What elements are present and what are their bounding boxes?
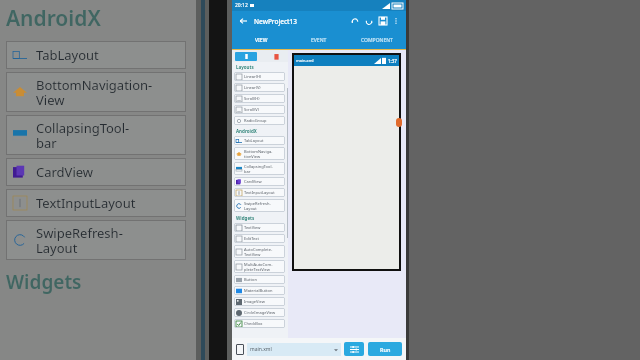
staticText: ImageView (244, 299, 265, 304)
staticText: Linear(H) (244, 74, 262, 79)
staticText: 20:12 (235, 2, 248, 9)
button[interactable]: VIEW (232, 31, 290, 49)
staticText: COMPONENT (361, 37, 393, 44)
button[interactable]: CardView (234, 177, 285, 186)
staticText: AutoComplete- TextView (244, 247, 273, 257)
button[interactable]: CollapsingTool- bar (6, 115, 186, 155)
button[interactable]: Redo (362, 14, 376, 28)
staticText: Widgets (6, 269, 82, 295)
button[interactable]: CheckBox (234, 319, 285, 328)
staticText: NewProject13 (254, 17, 298, 26)
button[interactable]: TextInputLayout (6, 189, 186, 217)
staticText: EditText (244, 236, 259, 241)
button[interactable]: Linear(V) (234, 83, 285, 92)
button[interactable]: Linear(H) (234, 72, 285, 81)
button[interactable]: Button (234, 275, 285, 284)
staticText: CardView (36, 163, 94, 181)
button[interactable]: SwipeRefresh- Layout (6, 220, 186, 260)
button[interactable]: CollapsingTool- bar (234, 162, 285, 175)
button[interactable]: TextView (234, 223, 285, 232)
button[interactable]: TabLayout (234, 136, 285, 145)
button[interactable]: AutoComplete- TextView (234, 245, 285, 258)
staticText: BottomNaviga- tionView (244, 149, 273, 159)
staticText: CollapsingTool- bar (36, 119, 130, 152)
button[interactable]: TextInputLayout (234, 188, 285, 197)
button[interactable]: Back (236, 14, 250, 28)
staticText: main.xml (296, 58, 314, 63)
staticText: Scroll(V) (244, 107, 259, 112)
button[interactable]: BottomNaviga- tionView (234, 147, 285, 160)
staticText: TextView (244, 225, 261, 230)
button[interactable]: SwipeRefresh- Layout (234, 199, 285, 212)
button[interactable]: BottomNavigation- View (6, 72, 186, 112)
button[interactable]: EVENT (290, 31, 348, 49)
button[interactable]: COMPONENT (348, 31, 406, 49)
button[interactable]: Delete (273, 53, 280, 60)
staticText: TabLayout (244, 138, 264, 143)
button[interactable]: RadioGroup (234, 116, 285, 125)
staticText: Button (244, 277, 257, 282)
button[interactable]: Scroll(V) (234, 105, 285, 114)
button[interactable]: CardView (6, 158, 186, 186)
staticText: Scroll(H) (244, 96, 260, 101)
staticText: Layouts (236, 64, 254, 70)
staticText: MultiAutoCom- pleteTextView (244, 262, 273, 272)
staticText: TextInputLayout (36, 194, 136, 212)
staticText: MaterialButton (244, 288, 273, 293)
staticText: AndroidX (236, 128, 257, 134)
button[interactable]: Layout file (236, 344, 244, 355)
staticText: EVENT (311, 37, 327, 44)
staticText: TextInputLayout (244, 190, 275, 195)
button[interactable]: Undo (348, 14, 362, 28)
button[interactable]: main.xml (247, 343, 341, 356)
staticText: CollapsingTool- bar (244, 164, 273, 174)
staticText: RadioGroup (244, 118, 267, 123)
staticText: AndroidX (6, 4, 101, 33)
button[interactable]: Scroll(H) (234, 94, 285, 103)
button[interactable]: Views (235, 52, 257, 61)
button[interactable]: CircleImageView (234, 308, 285, 317)
button[interactable]: EditText (234, 234, 285, 243)
button[interactable]: MaterialButton (234, 286, 285, 295)
staticText: CardView (244, 179, 262, 184)
staticText: SwipeRefresh- Layout (36, 224, 123, 257)
staticText: VIEW (255, 37, 268, 44)
staticText: BottomNavigation- View (36, 76, 153, 109)
button[interactable]: ImageView (234, 297, 285, 306)
staticText: main.xml (250, 346, 272, 353)
button[interactable]: Run (368, 342, 402, 356)
staticText: TabLayout (36, 46, 99, 64)
staticText: Widgets (236, 215, 255, 221)
button[interactable]: MultiAutoCom- pleteTextView (234, 260, 285, 273)
staticText: Run (380, 346, 391, 353)
button[interactable]: Save (376, 14, 390, 28)
button[interactable]: TabLayout (6, 41, 186, 69)
staticText: CheckBox (244, 321, 263, 326)
staticText: SwipeRefresh- Layout (244, 201, 271, 211)
staticText: CircleImageView (244, 310, 276, 315)
button[interactable]: Settings (344, 342, 364, 356)
staticText: Linear(V) (244, 85, 261, 90)
button[interactable]: More options (390, 15, 402, 27)
staticText: 1:37 (388, 58, 397, 64)
